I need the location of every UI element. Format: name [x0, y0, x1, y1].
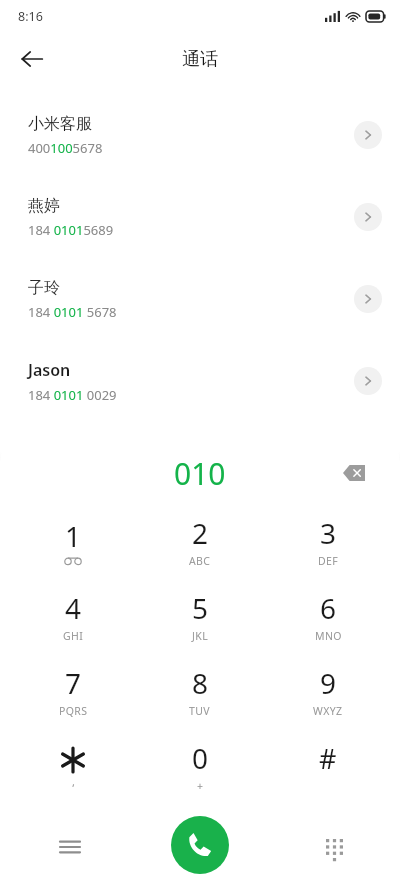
- button[interactable]: 燕婷: [0, 176, 400, 258]
- staticText: JKL: [192, 629, 209, 643]
- staticText: 9: [320, 664, 337, 702]
- button[interactable]: Dialpad: [312, 825, 356, 869]
- button[interactable]: Back: [8, 35, 56, 83]
- button[interactable]: 5: [145, 578, 255, 653]
- staticText: ,: [72, 774, 75, 789]
- staticText: 0: [192, 739, 209, 777]
- button[interactable]: Open contact 子玲: [354, 285, 382, 313]
- staticText: +: [197, 779, 204, 793]
- staticText: 8: [192, 664, 209, 702]
- button[interactable]: Stephanie: [0, 422, 400, 504]
- staticText: PQRS: [59, 704, 88, 718]
- staticText: GHI: [63, 629, 84, 643]
- button[interactable]: 2: [145, 503, 255, 578]
- staticText: 小米客服: [28, 114, 92, 134]
- button[interactable]: Menu: [48, 825, 92, 869]
- staticText: DEF: [318, 554, 339, 568]
- staticText: 8:16: [18, 8, 43, 25]
- staticText: 4: [65, 589, 82, 627]
- staticText: 010: [174, 453, 226, 494]
- button[interactable]: 子玲: [0, 258, 400, 340]
- staticText: 7: [65, 664, 82, 702]
- staticText: 通话: [182, 48, 218, 71]
- button[interactable]: Delete: [332, 451, 376, 495]
- staticText: Jason: [28, 359, 71, 381]
- staticText: 184 0101 0029: [28, 386, 117, 404]
- button[interactable]: #: [273, 728, 383, 803]
- button[interactable]: 小米客服: [0, 94, 400, 176]
- button[interactable]: Open contact Jason: [354, 367, 382, 395]
- button[interactable]: ,: [18, 728, 128, 803]
- staticText: ABC: [189, 554, 211, 568]
- staticText: 6: [320, 589, 337, 627]
- button[interactable]: Jason: [0, 340, 400, 422]
- button[interactable]: 1: [18, 503, 128, 578]
- staticText: 184 01015689: [28, 221, 114, 239]
- button[interactable]: 6: [273, 578, 383, 653]
- button[interactable]: 7: [18, 653, 128, 728]
- staticText: #: [319, 740, 337, 777]
- staticText: 3: [320, 514, 337, 552]
- button[interactable]: Open contact 燕婷: [354, 203, 382, 231]
- staticText: MNO: [315, 629, 342, 643]
- staticText: 5: [192, 589, 209, 627]
- button[interactable]: 0: [145, 728, 255, 803]
- button[interactable]: Open contact 小米客服: [354, 121, 382, 149]
- staticText: 1: [65, 517, 82, 555]
- button[interactable]: 4: [18, 578, 128, 653]
- staticText: 2: [192, 514, 209, 552]
- button[interactable]: 9: [273, 653, 383, 728]
- staticText: TUV: [189, 704, 211, 718]
- button[interactable]: 8: [145, 653, 255, 728]
- staticText: 184 0101 5678: [28, 303, 117, 321]
- staticText: 4001005678: [28, 139, 103, 157]
- button[interactable]: Call: [171, 816, 229, 874]
- button[interactable]: 3: [273, 503, 383, 578]
- staticText: 子玲: [28, 278, 60, 298]
- staticText: WXYZ: [313, 704, 343, 718]
- button[interactable]: Open contact Stephanie: [354, 449, 382, 477]
- staticText: 燕婷: [28, 196, 60, 216]
